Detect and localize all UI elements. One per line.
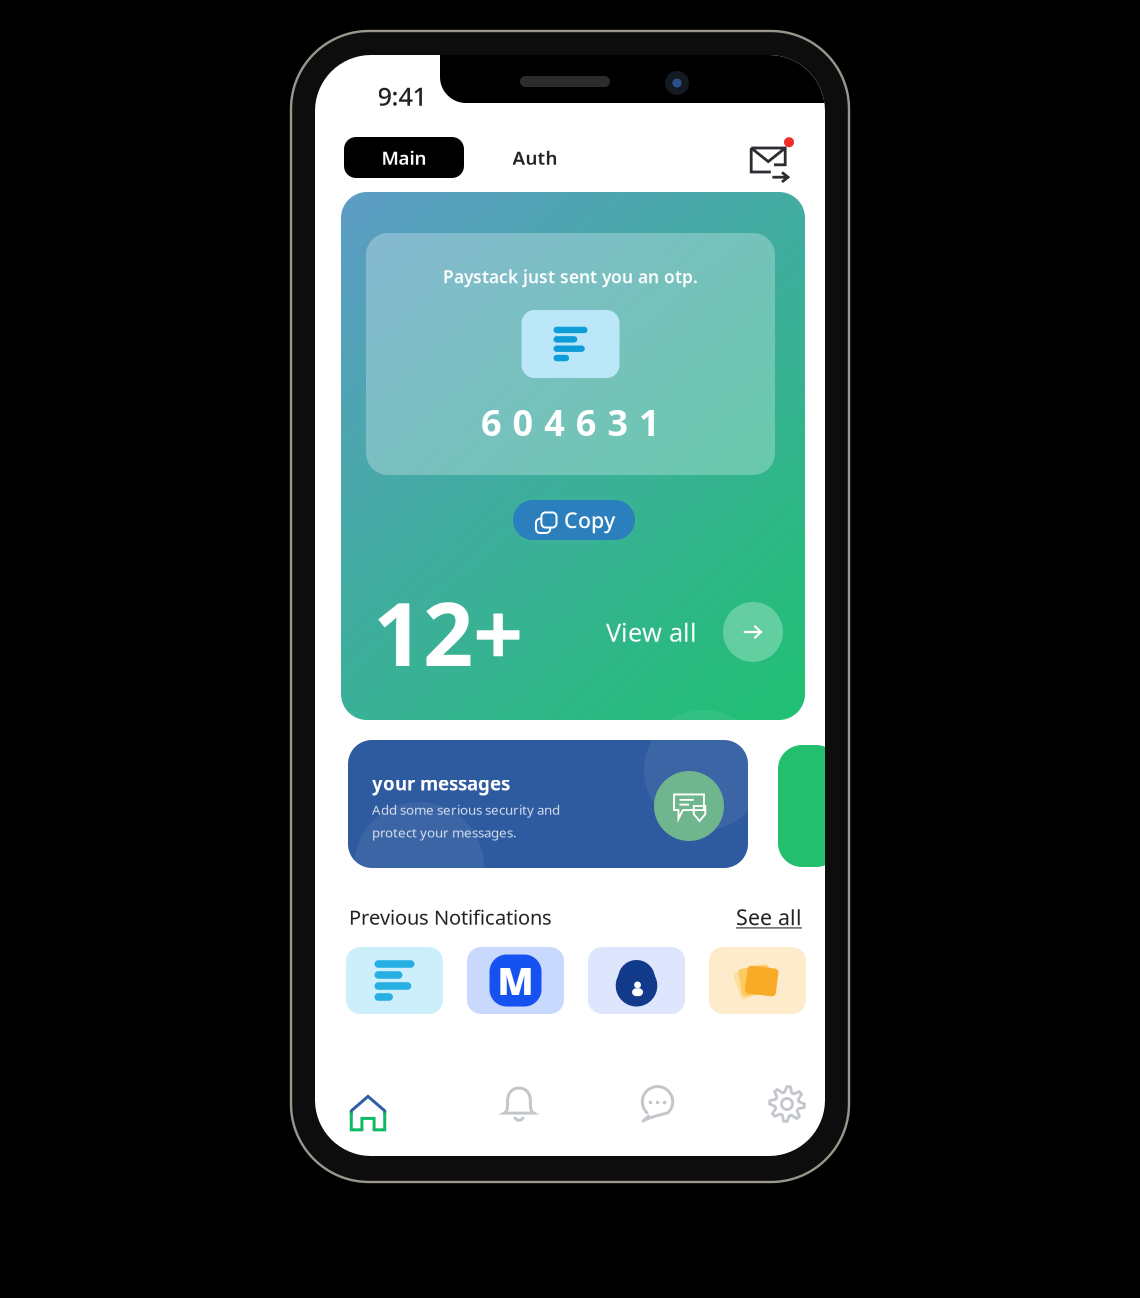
button[interactable]: Main	[344, 137, 464, 178]
button[interactable]: Settings	[759, 1076, 815, 1132]
staticText: Copy	[564, 506, 615, 534]
button[interactable]: Copy	[513, 500, 635, 540]
button[interactable]: View all	[606, 615, 697, 649]
staticText: 9:41	[377, 79, 426, 113]
button[interactable]: Messages	[628, 1076, 684, 1132]
staticText: Auth	[512, 145, 557, 170]
button[interactable]: Auth	[480, 137, 590, 178]
button[interactable]: Notifications	[491, 1076, 547, 1132]
staticText: View all	[606, 615, 697, 649]
button[interactable]: Messages	[750, 140, 790, 180]
staticText: See all	[736, 903, 802, 931]
staticText: 12+	[373, 574, 523, 690]
button[interactable]: See all	[736, 903, 802, 931]
staticText: Main	[381, 145, 426, 170]
staticText: M	[497, 956, 533, 1005]
staticText: Add some serious security and	[372, 801, 560, 818]
button[interactable]: Secure	[588, 947, 685, 1014]
button[interactable]: Home	[340, 1076, 396, 1132]
button[interactable]: Mono	[467, 947, 564, 1014]
staticText: 604631	[481, 398, 660, 446]
button[interactable]: Paystack	[346, 947, 443, 1014]
staticText: protect your messages.	[372, 823, 517, 841]
button[interactable]: Notes	[709, 947, 806, 1014]
staticText: your messages	[372, 771, 510, 796]
staticText: Previous Notifications	[349, 904, 552, 930]
button[interactable]: View all	[723, 602, 783, 662]
staticText: Paystack just sent you an otp.	[443, 265, 698, 288]
